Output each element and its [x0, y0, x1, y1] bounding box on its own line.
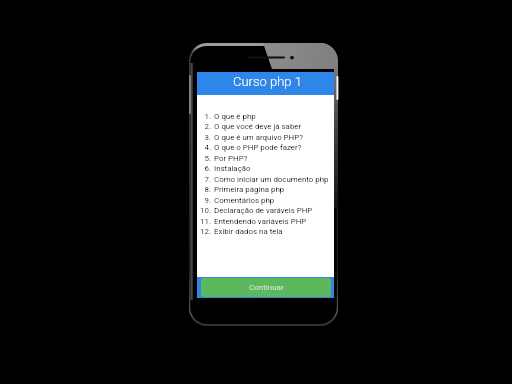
button[interactable]: 2. [197, 122, 334, 133]
staticText: 12. [197, 227, 211, 236]
staticText: 4. [197, 143, 211, 152]
staticText: 7. [197, 175, 211, 184]
button[interactable]: 9. [197, 196, 334, 207]
button[interactable]: 5. [197, 154, 334, 165]
button[interactable]: 4. [197, 143, 334, 154]
staticText: 8. [197, 185, 211, 194]
button[interactable]: 12. [197, 227, 334, 238]
staticText: Por PHP? [214, 154, 248, 163]
button[interactable]: 1. [197, 112, 334, 123]
staticText: O que o PHP pode fazer? [214, 143, 302, 152]
staticText: Primeira página php [214, 185, 285, 194]
button[interactable]: 8. [197, 185, 334, 196]
staticText: 6. [197, 164, 211, 173]
button[interactable]: 7. [197, 175, 334, 186]
staticText: Como iniciar um documento php [214, 175, 329, 184]
staticText: Curso php 1 [233, 74, 302, 89]
button[interactable]: 10. [197, 206, 334, 217]
button[interactable]: Curso php 1 [197, 72, 334, 95]
staticText: O que é um arquivo PHP? [214, 133, 303, 142]
staticText: Continuar [249, 283, 284, 292]
staticText: O que você deve já saber [214, 122, 302, 131]
staticText: Declaração de varáveis PHP [214, 206, 313, 215]
button[interactable]: 3. [197, 133, 334, 144]
staticText: 1. [197, 112, 211, 121]
staticText: 11. [197, 217, 211, 226]
button[interactable]: 6. [197, 164, 334, 175]
staticText: 10. [197, 206, 211, 215]
staticText: 3. [197, 133, 211, 142]
staticText: 5. [197, 154, 211, 163]
staticText: 9. [197, 196, 211, 205]
staticText: 2. [197, 122, 211, 131]
staticText: Exibir dados na tela [214, 227, 283, 236]
button[interactable]: Continuar [201, 278, 331, 297]
staticText: Entendendo variáveis PHP [214, 217, 307, 226]
button[interactable]: 11. [197, 217, 334, 228]
staticText: Comentários php [214, 196, 275, 205]
staticText: O que é php [214, 112, 256, 121]
staticText: Instalação [214, 164, 251, 173]
